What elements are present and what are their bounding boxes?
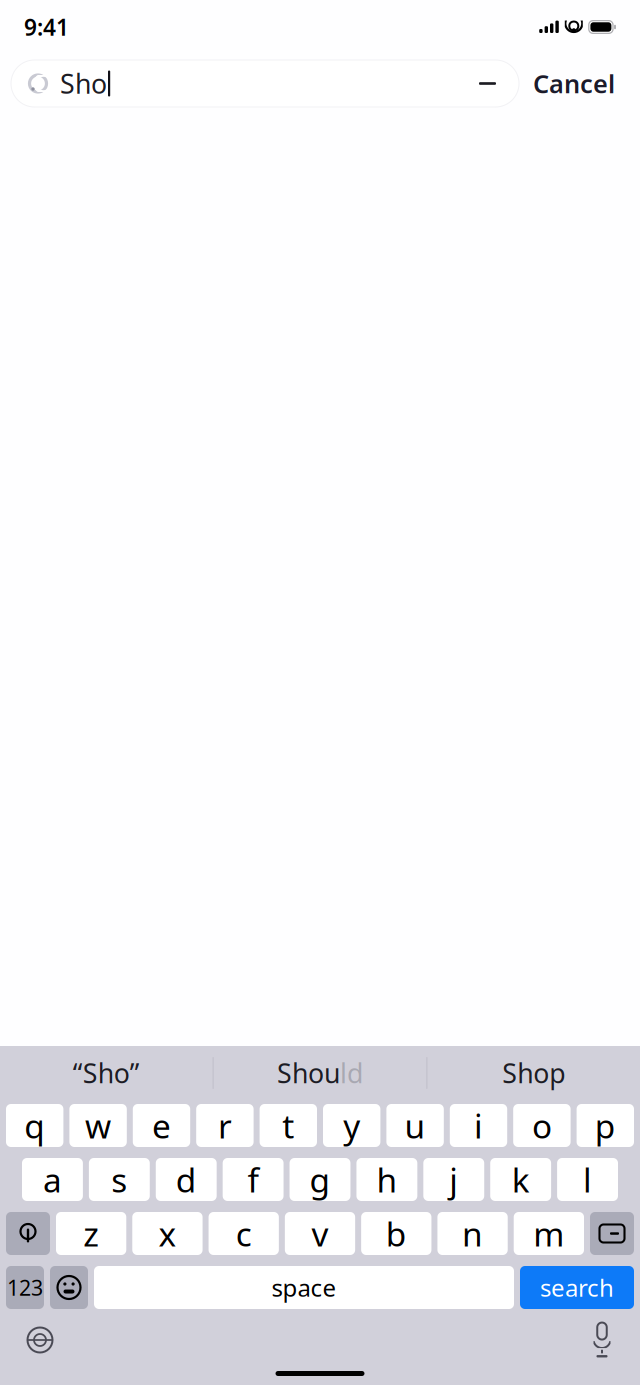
staticText: y <box>343 1103 360 1148</box>
staticText: Shou <box>277 1055 340 1091</box>
button[interactable]: z <box>56 1212 126 1255</box>
staticText: o <box>532 1103 552 1148</box>
staticText: e <box>152 1103 171 1148</box>
staticText: Cancel <box>533 67 615 100</box>
button[interactable]: x <box>132 1212 203 1255</box>
staticText: c <box>236 1211 252 1256</box>
button[interactable]: Shop <box>427 1046 640 1100</box>
button[interactable]: Dictation <box>582 1317 622 1363</box>
button[interactable]: Switch keyboard <box>18 1318 62 1362</box>
staticText: i <box>474 1103 483 1148</box>
button[interactable]: a <box>22 1158 83 1201</box>
staticText: q <box>24 1103 45 1148</box>
staticText: h <box>376 1157 397 1202</box>
staticText: 9:41 <box>24 12 69 42</box>
staticText: r <box>218 1103 232 1148</box>
button[interactable]: q <box>6 1104 63 1147</box>
staticText: search <box>540 1272 614 1303</box>
button[interactable]: c <box>209 1212 279 1255</box>
staticText: k <box>512 1157 530 1202</box>
button[interactable]: d <box>156 1158 217 1201</box>
staticText: 123 <box>7 1273 43 1302</box>
staticText: ld <box>340 1055 363 1091</box>
button[interactable]: o <box>513 1104 571 1147</box>
button[interactable]: Sho <box>11 60 519 107</box>
button[interactable]: p <box>577 1104 634 1147</box>
staticText: “Sho” <box>73 1055 140 1091</box>
button[interactable]: s <box>89 1158 150 1201</box>
button[interactable]: Shift <box>6 1212 50 1255</box>
button[interactable]: m <box>514 1212 584 1255</box>
staticText: d <box>176 1157 197 1202</box>
button[interactable]: b <box>361 1212 431 1255</box>
staticText: u <box>405 1103 426 1148</box>
button[interactable]: j <box>423 1158 484 1201</box>
staticText: p <box>595 1103 616 1148</box>
button[interactable]: Shou <box>214 1046 426 1100</box>
button[interactable]: r <box>196 1104 254 1147</box>
staticText: v <box>311 1211 328 1256</box>
button[interactable]: t <box>260 1104 317 1147</box>
button[interactable]: Emoji <box>50 1266 88 1309</box>
button[interactable]: h <box>356 1158 417 1201</box>
button[interactable]: Numbers <box>6 1266 44 1309</box>
staticText: b <box>386 1211 407 1256</box>
staticText: f <box>248 1157 259 1202</box>
button[interactable]: f <box>223 1158 284 1201</box>
staticText: m <box>533 1211 564 1256</box>
staticText: j <box>449 1157 458 1202</box>
button[interactable]: Delete <box>590 1212 634 1255</box>
button[interactable]: “Sho” <box>0 1046 212 1100</box>
button[interactable]: e <box>133 1104 190 1147</box>
button[interactable]: u <box>386 1104 444 1147</box>
button[interactable]: l <box>557 1158 618 1201</box>
staticText: s <box>111 1157 127 1202</box>
staticText: Shop <box>502 1055 565 1091</box>
staticText: n <box>462 1211 483 1256</box>
button[interactable]: i <box>450 1104 507 1147</box>
staticText: x <box>158 1211 176 1256</box>
button[interactable]: space <box>94 1266 514 1309</box>
staticText: g <box>309 1157 330 1202</box>
staticText: z <box>83 1211 99 1256</box>
button[interactable]: Cancel <box>519 60 629 107</box>
staticText: space <box>271 1272 336 1303</box>
staticText: t <box>282 1103 294 1148</box>
staticText: a <box>43 1157 62 1202</box>
button[interactable]: g <box>290 1158 350 1201</box>
staticText: l <box>583 1157 592 1202</box>
button[interactable]: y <box>323 1104 380 1147</box>
button[interactable]: k <box>490 1158 551 1201</box>
staticText: w <box>85 1103 111 1148</box>
button[interactable]: n <box>437 1212 508 1255</box>
button[interactable]: w <box>69 1104 127 1147</box>
button[interactable]: v <box>285 1212 355 1255</box>
staticText: Sho <box>60 66 107 101</box>
button[interactable]: search <box>520 1266 634 1309</box>
